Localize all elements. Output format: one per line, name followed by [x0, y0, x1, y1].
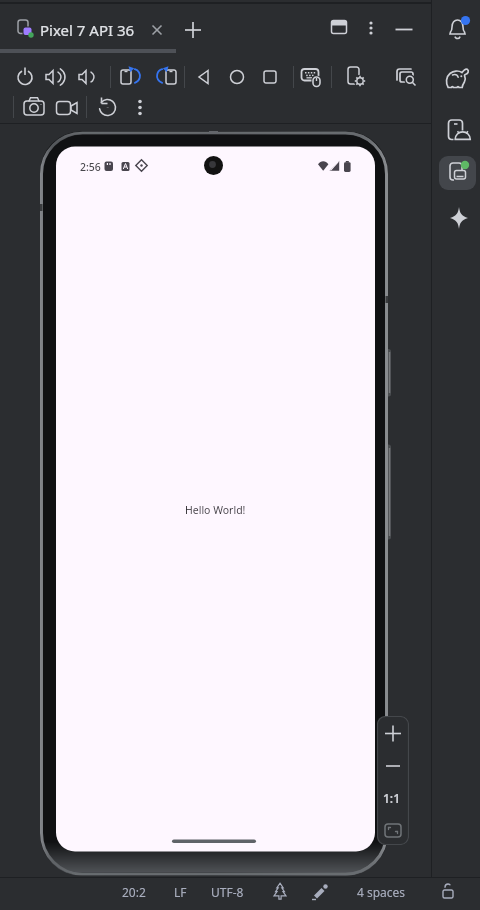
button[interactable]	[12, 64, 38, 90]
staticText: Pixel 7 API 36	[40, 20, 135, 40]
button[interactable]	[438, 881, 460, 903]
button[interactable]	[393, 64, 421, 90]
staticText: 2:56	[80, 160, 101, 174]
button[interactable]: UTF-8	[207, 881, 255, 903]
button[interactable]	[191, 64, 217, 90]
button[interactable]	[183, 20, 203, 40]
staticText: 1:1	[383, 790, 401, 806]
button[interactable]	[444, 62, 472, 90]
button[interactable]: 4 spaces	[352, 881, 422, 903]
staticText: UTF-8	[211, 884, 244, 900]
button[interactable]	[444, 204, 474, 234]
button[interactable]	[54, 95, 80, 121]
button[interactable]	[299, 64, 325, 90]
button[interactable]	[439, 156, 476, 190]
button[interactable]: 1:1	[377, 782, 409, 814]
staticText: Hello World!	[185, 503, 246, 517]
button[interactable]	[308, 881, 332, 903]
staticText: LF	[174, 884, 187, 900]
button[interactable]	[43, 64, 69, 90]
button[interactable]	[444, 116, 474, 148]
button[interactable]	[117, 64, 145, 90]
button[interactable]	[363, 19, 379, 37]
button[interactable]	[257, 64, 283, 90]
button[interactable]	[130, 95, 152, 121]
button[interactable]	[95, 95, 121, 121]
button[interactable]	[377, 750, 409, 782]
button[interactable]	[330, 19, 348, 36]
button[interactable]	[377, 716, 409, 748]
button[interactable]	[75, 64, 101, 90]
button[interactable]	[21, 95, 47, 121]
button[interactable]	[152, 64, 180, 90]
button[interactable]	[224, 64, 250, 90]
button[interactable]: 20:2	[118, 881, 158, 903]
button[interactable]	[444, 14, 474, 44]
button[interactable]	[270, 881, 290, 903]
staticText: 4 spaces	[357, 884, 406, 900]
button[interactable]	[8, 8, 168, 48]
button[interactable]	[343, 64, 369, 90]
button[interactable]: LF	[170, 881, 198, 903]
button[interactable]	[148, 21, 166, 39]
staticText: 20:2	[122, 884, 146, 900]
button[interactable]	[394, 20, 414, 38]
button[interactable]	[16, 19, 36, 39]
button[interactable]	[377, 814, 409, 846]
